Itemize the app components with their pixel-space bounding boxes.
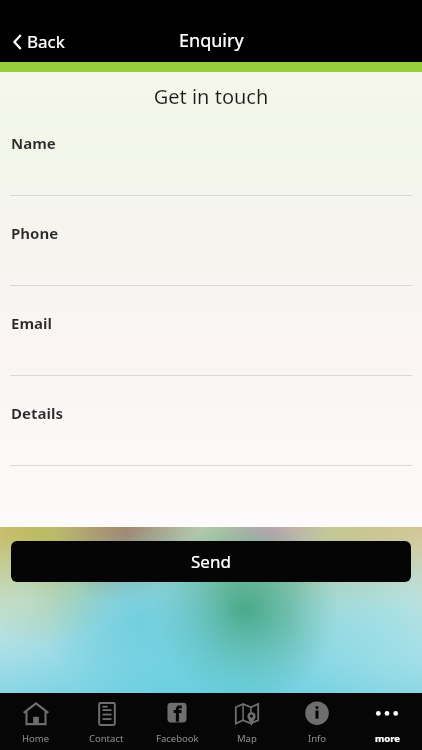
button[interactable]: Name [0, 129, 422, 219]
staticText: Map [237, 732, 257, 745]
staticText: Email [11, 313, 52, 333]
button[interactable]: Phone [0, 219, 422, 309]
staticText: Contact [89, 732, 124, 745]
button[interactable]: Facebook [142, 693, 212, 750]
button[interactable]: Home [0, 693, 71, 750]
button[interactable]: Details [0, 399, 422, 489]
button[interactable]: Email [0, 309, 422, 399]
staticText: more [375, 732, 400, 745]
staticText: Back [27, 30, 65, 53]
staticText: Send [191, 550, 231, 573]
button[interactable]: Back [10, 26, 69, 57]
staticText: Name [11, 133, 56, 153]
staticText: Home [22, 732, 50, 745]
button[interactable]: Contact [71, 693, 142, 750]
button[interactable]: Map [212, 693, 282, 750]
staticText: Get in touch [0, 83, 422, 110]
staticText: Info [308, 732, 327, 745]
staticText: Phone [11, 223, 59, 243]
button[interactable]: more [352, 693, 422, 750]
staticText: Enquiry [179, 28, 244, 53]
staticText: Details [11, 403, 63, 423]
button[interactable]: Send [11, 541, 411, 582]
button[interactable]: Info [282, 693, 352, 750]
staticText: Facebook [156, 732, 199, 745]
